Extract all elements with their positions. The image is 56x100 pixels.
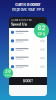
staticText: BOOST	[23, 79, 33, 83]
staticText: Speed Up	[11, 22, 27, 26]
staticText: FPS	[37, 32, 45, 36]
staticText: FPS	[5, 74, 11, 77]
staticText: 20	[5, 69, 11, 74]
staticText: GAME BOOSTER	[11, 19, 32, 22]
staticText: 62	[37, 24, 45, 32]
staticText: Game Booster	[15, 2, 41, 7]
staticText: Improve Your FPS	[11, 7, 44, 12]
